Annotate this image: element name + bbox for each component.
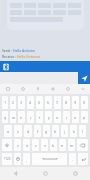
staticText: 2 xyxy=(12,100,15,105)
staticText: o xyxy=(74,115,77,120)
staticText: c xyxy=(35,143,37,148)
staticText: x xyxy=(26,143,28,148)
button[interactable]: Recent apps xyxy=(60,167,90,180)
staticText: 6 xyxy=(47,100,50,105)
button[interactable]: Bluetooth device xyxy=(0,61,90,72)
button[interactable]: v xyxy=(41,139,48,151)
button[interactable]: l xyxy=(79,125,86,137)
button[interactable]: 4 xyxy=(27,96,34,109)
button[interactable]: g xyxy=(43,125,50,137)
staticText: p xyxy=(83,115,86,120)
button[interactable]: 2 xyxy=(10,96,16,109)
button[interactable]: s xyxy=(14,125,22,137)
button[interactable]: 8 xyxy=(63,96,70,109)
staticText: w xyxy=(12,115,15,120)
staticText: z xyxy=(17,143,19,148)
button[interactable]: Backspace xyxy=(77,139,88,151)
button[interactable]: 1 xyxy=(2,96,8,109)
button[interactable]: m xyxy=(68,139,75,151)
staticText: f xyxy=(37,129,39,134)
staticText: k xyxy=(73,129,75,134)
button[interactable]: f xyxy=(34,125,41,137)
button[interactable]: Clipboard xyxy=(0,84,15,94)
button[interactable]: Emoji xyxy=(14,153,21,165)
button[interactable]: y xyxy=(45,111,52,123)
staticText: v xyxy=(44,143,46,148)
staticText: b xyxy=(52,143,55,148)
button[interactable]: x xyxy=(23,139,30,151)
staticText: . xyxy=(72,157,73,162)
staticText: e xyxy=(20,115,23,120)
button[interactable]: r xyxy=(27,111,34,123)
staticText: 1 xyxy=(4,100,7,105)
staticText: 5 xyxy=(38,100,41,105)
button[interactable]: 5 xyxy=(36,96,43,109)
button[interactable]: n xyxy=(59,139,66,151)
button[interactable]: Microphone xyxy=(30,84,45,94)
staticText: j xyxy=(64,129,65,134)
button[interactable]: Send xyxy=(78,72,90,84)
button[interactable]: d xyxy=(24,125,32,137)
button[interactable]: b xyxy=(50,139,57,151)
staticText: Receive : xyxy=(2,54,17,59)
staticText: u xyxy=(56,115,59,120)
button[interactable]: Home xyxy=(30,167,60,180)
button[interactable]: i xyxy=(63,111,70,123)
button[interactable]: o xyxy=(72,111,79,123)
button[interactable]: 6 xyxy=(45,96,52,109)
button[interactable]: Sticker xyxy=(60,84,75,94)
staticText: Hello Universe xyxy=(17,54,41,59)
button[interactable]: More xyxy=(75,84,90,94)
staticText: 9 xyxy=(74,100,77,105)
button[interactable]: 9 xyxy=(72,96,79,109)
staticText: Hello Arduino xyxy=(13,48,35,53)
button[interactable]: 0 xyxy=(81,96,88,109)
staticText: q xyxy=(4,115,7,120)
button[interactable]: q xyxy=(2,111,8,123)
staticText: m xyxy=(70,143,74,148)
button[interactable]: , xyxy=(23,153,30,165)
button[interactable]: ?123 xyxy=(2,153,12,165)
staticText: a xyxy=(7,129,10,134)
staticText: h xyxy=(54,129,57,134)
button[interactable]: t xyxy=(36,111,43,123)
staticText: 0 xyxy=(83,100,86,105)
button[interactable]: Settings xyxy=(45,84,60,94)
staticText: Send : xyxy=(2,48,13,53)
button[interactable]: w xyxy=(10,111,16,123)
button[interactable]: u xyxy=(54,111,61,123)
staticText: y xyxy=(48,115,50,120)
button[interactable]: 7 xyxy=(54,96,61,109)
button[interactable]: Shift xyxy=(2,139,12,151)
staticText: i xyxy=(66,115,67,120)
staticText: r xyxy=(30,115,32,120)
staticText: , xyxy=(26,157,27,162)
button[interactable]: e xyxy=(18,111,25,123)
staticText: 3 xyxy=(20,100,23,105)
staticText: s xyxy=(17,129,19,134)
button[interactable] xyxy=(32,153,67,165)
staticText: ?123 xyxy=(4,157,11,161)
button[interactable]: Voice xyxy=(15,84,30,94)
button[interactable]: p xyxy=(81,111,88,123)
staticText: 4 xyxy=(29,100,32,105)
staticText: g xyxy=(45,129,48,134)
button[interactable]: Enter xyxy=(78,153,88,165)
button[interactable]: k xyxy=(70,125,77,137)
button[interactable]: z xyxy=(14,139,21,151)
staticText: t xyxy=(39,115,41,120)
staticText: 8 xyxy=(65,100,68,105)
button[interactable]: j xyxy=(61,125,68,137)
button[interactable]: a xyxy=(4,125,12,137)
button[interactable]: 3 xyxy=(18,96,25,109)
button[interactable]: h xyxy=(52,125,59,137)
staticText: 7 xyxy=(56,100,59,105)
other: Bluetooth device xyxy=(2,63,10,71)
button[interactable]: c xyxy=(32,139,39,151)
staticText: n xyxy=(61,143,64,148)
staticText: l xyxy=(82,129,83,134)
button[interactable]: Back xyxy=(0,167,30,180)
staticText: d xyxy=(27,129,30,134)
